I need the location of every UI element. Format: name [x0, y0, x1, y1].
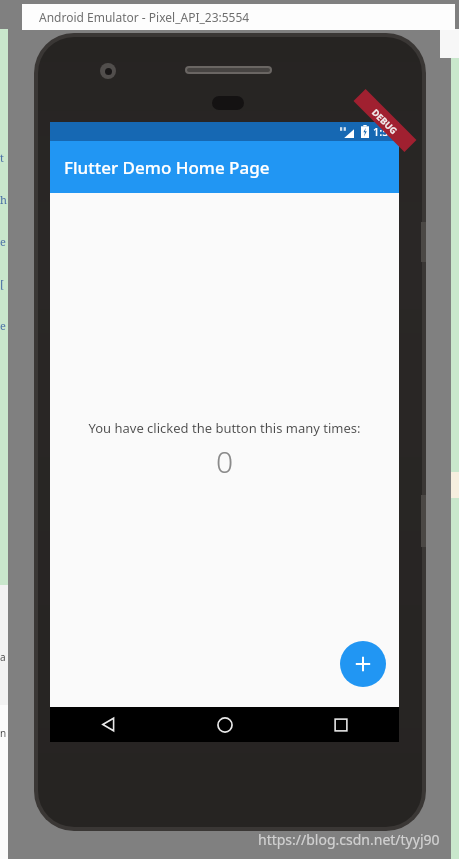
staticText: a [0, 650, 6, 664]
button[interactable]: Recent apps [283, 707, 399, 742]
staticText: https://blog.csdn.net/tyyj90 [258, 830, 440, 849]
button[interactable]: Increment [340, 641, 386, 687]
staticText: Flutter Demo Home Page [64, 156, 270, 179]
staticText: n [0, 726, 7, 740]
button[interactable]: Back [50, 707, 167, 742]
staticText: 1:51 [373, 124, 395, 139]
staticText: You have clicked the button this many ti… [88, 419, 361, 437]
staticText: Android Emulator - Pixel_API_23:5554 [39, 9, 250, 25]
staticText: DEBUG [370, 106, 400, 136]
staticText: t h e [ e [0, 150, 7, 333]
button[interactable]: Home [167, 707, 283, 742]
staticText: 0 [216, 441, 234, 482]
